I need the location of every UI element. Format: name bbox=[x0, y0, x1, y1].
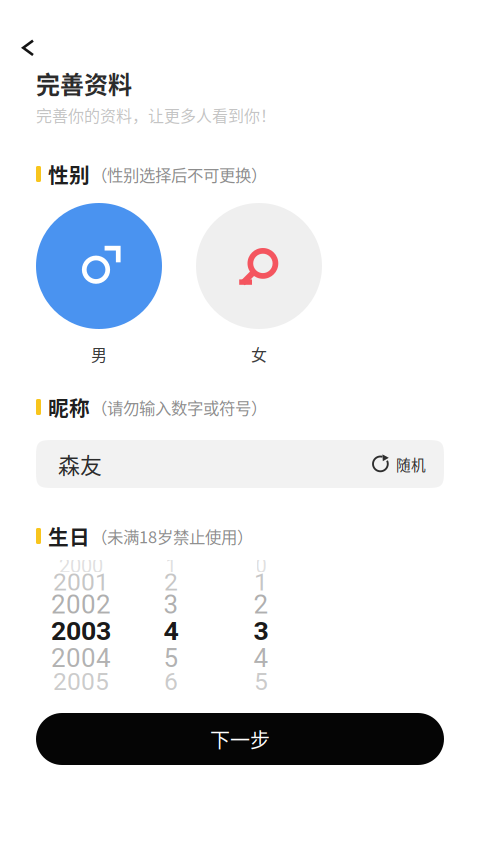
staticText: （未满18岁禁止使用） bbox=[91, 524, 253, 548]
staticText: 2 bbox=[164, 567, 178, 596]
staticText: 0 bbox=[255, 554, 266, 578]
staticText: 4 bbox=[253, 643, 268, 673]
staticText: 2004 bbox=[51, 643, 111, 673]
staticText: 女 bbox=[251, 342, 267, 366]
staticText: 性别 bbox=[48, 159, 90, 189]
staticText: 2003 bbox=[51, 615, 111, 647]
staticText: 昵称 bbox=[48, 392, 90, 422]
staticText: 森友 bbox=[58, 448, 102, 480]
staticText: 4 bbox=[163, 615, 178, 647]
staticText: 3 bbox=[163, 589, 178, 620]
staticText: 1 bbox=[254, 567, 268, 596]
staticText: 2 bbox=[253, 589, 268, 620]
staticText: 生日 bbox=[48, 521, 90, 551]
button[interactable]: 下一步 bbox=[36, 713, 444, 765]
staticText: 5 bbox=[254, 667, 268, 696]
staticText: 6 bbox=[164, 667, 178, 696]
button[interactable]: 男 bbox=[36, 203, 162, 364]
staticText: 1 bbox=[165, 554, 176, 578]
staticText: 5 bbox=[163, 643, 178, 673]
staticText: 下一步 bbox=[210, 724, 270, 753]
staticText: （性别选择后不可更换） bbox=[91, 162, 267, 186]
staticText: （请勿输入数字或符号） bbox=[91, 395, 267, 419]
staticText: 完善你的资料，让更多人看到你！ bbox=[36, 103, 276, 127]
staticText: 2005 bbox=[53, 667, 109, 696]
staticText: 完善资料 bbox=[36, 66, 132, 100]
staticText: 2000 bbox=[59, 554, 103, 578]
staticText: 随机 bbox=[396, 453, 426, 475]
button[interactable]: Back bbox=[10, 31, 46, 65]
staticText: 3 bbox=[253, 615, 268, 647]
staticText: 2002 bbox=[51, 589, 111, 620]
button[interactable]: 随机 bbox=[371, 440, 444, 488]
staticText: 男 bbox=[91, 342, 107, 366]
staticText: 2001 bbox=[53, 567, 109, 596]
button[interactable]: 女 bbox=[196, 203, 322, 364]
